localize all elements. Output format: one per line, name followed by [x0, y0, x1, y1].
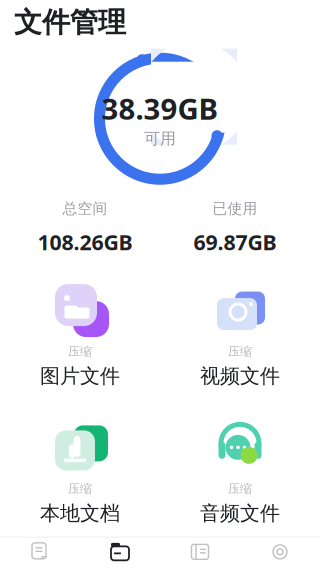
staticText: 压缩 — [228, 344, 252, 359]
button[interactable]: 日记 — [160, 535, 240, 568]
staticText: 压缩 — [228, 481, 252, 496]
staticText: 图片文件 — [40, 364, 120, 388]
staticText: 文件管理 — [14, 5, 126, 40]
staticText: 音频文件 — [200, 501, 280, 526]
staticText: 总空间 — [62, 200, 107, 218]
button[interactable]: 压缩 — [0, 278, 160, 391]
staticText: 69.87GB — [193, 228, 276, 256]
button[interactable]: 压缩 — [160, 278, 320, 391]
staticText: 已使用 — [212, 200, 257, 218]
staticText: 本地文档 — [40, 501, 120, 526]
staticText: 可用 — [144, 129, 176, 149]
button[interactable]: 压缩 — [160, 415, 320, 529]
staticText: 压缩 — [68, 344, 92, 359]
staticText: 视频文件 — [200, 364, 280, 388]
button[interactable]: 压缩 — [0, 415, 160, 529]
staticText: 108.26GB — [37, 228, 132, 256]
button[interactable]: 设置 — [240, 535, 320, 568]
button[interactable]: 文件 — [80, 535, 160, 568]
staticText: 压缩 — [68, 481, 92, 496]
button[interactable]: 首页 — [0, 535, 80, 568]
staticText: 38.39GB — [101, 89, 218, 128]
